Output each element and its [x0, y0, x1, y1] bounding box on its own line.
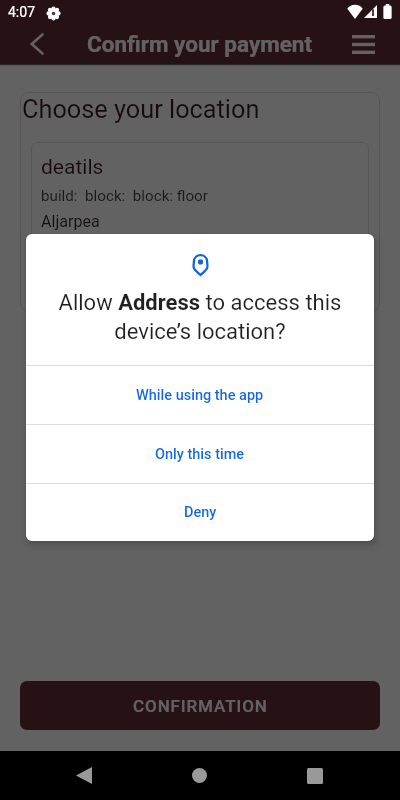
button[interactable]: CONFIRMATION [20, 681, 380, 730]
staticText: deatils [41, 155, 104, 180]
button[interactable]: Recents [291, 752, 338, 799]
staticText: build: block: block: floor [41, 187, 208, 205]
button[interactable]: Home [176, 752, 223, 799]
staticText: Confirm your payment [87, 31, 313, 57]
staticText: Allow Address to access this device’s lo… [42, 290, 358, 344]
button[interactable]: Menu [339, 24, 387, 64]
button[interactable]: Back [60, 752, 107, 799]
button[interactable]: Only this time [26, 425, 374, 483]
staticText: Deny [184, 504, 217, 521]
staticText: 4:07 [8, 4, 35, 20]
button[interactable]: deatils [31, 142, 369, 302]
button[interactable]: Deny [26, 484, 374, 541]
button[interactable]: Back [13, 24, 61, 64]
staticText: CONFIRMATION [133, 696, 268, 716]
staticText: Choose your location [22, 95, 260, 125]
staticText: Aljarpea [41, 212, 100, 231]
staticText: While using the app [136, 387, 264, 404]
button[interactable]: While using the app [26, 366, 374, 424]
staticText: Only this time [155, 446, 245, 463]
